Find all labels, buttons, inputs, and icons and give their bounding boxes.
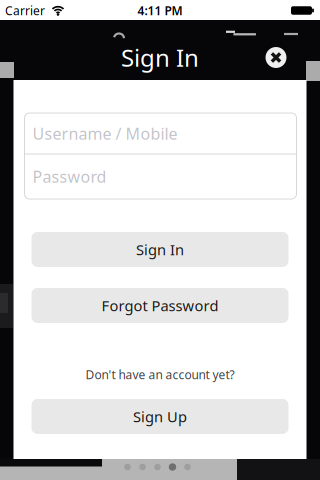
button[interactable]: Forgot Password bbox=[31, 288, 288, 323]
staticText: Don't have an account yet? bbox=[85, 366, 234, 382]
staticText: Password bbox=[32, 166, 106, 187]
staticText: Sign Up bbox=[133, 407, 187, 426]
button[interactable]: Password bbox=[25, 154, 295, 198]
staticText: Sign In bbox=[136, 240, 184, 259]
button[interactable]: Close bbox=[265, 47, 286, 68]
staticText: 4:11 PM bbox=[137, 2, 182, 18]
staticText: Username / Mobile bbox=[32, 123, 177, 144]
button[interactable]: Sign In bbox=[31, 232, 288, 267]
staticText: Forgot Password bbox=[101, 296, 218, 315]
button[interactable]: Username / Mobile bbox=[25, 113, 295, 153]
staticText: Sign In bbox=[121, 42, 199, 73]
button[interactable]: Sign Up bbox=[31, 399, 288, 434]
staticText: Carrier bbox=[5, 2, 45, 18]
